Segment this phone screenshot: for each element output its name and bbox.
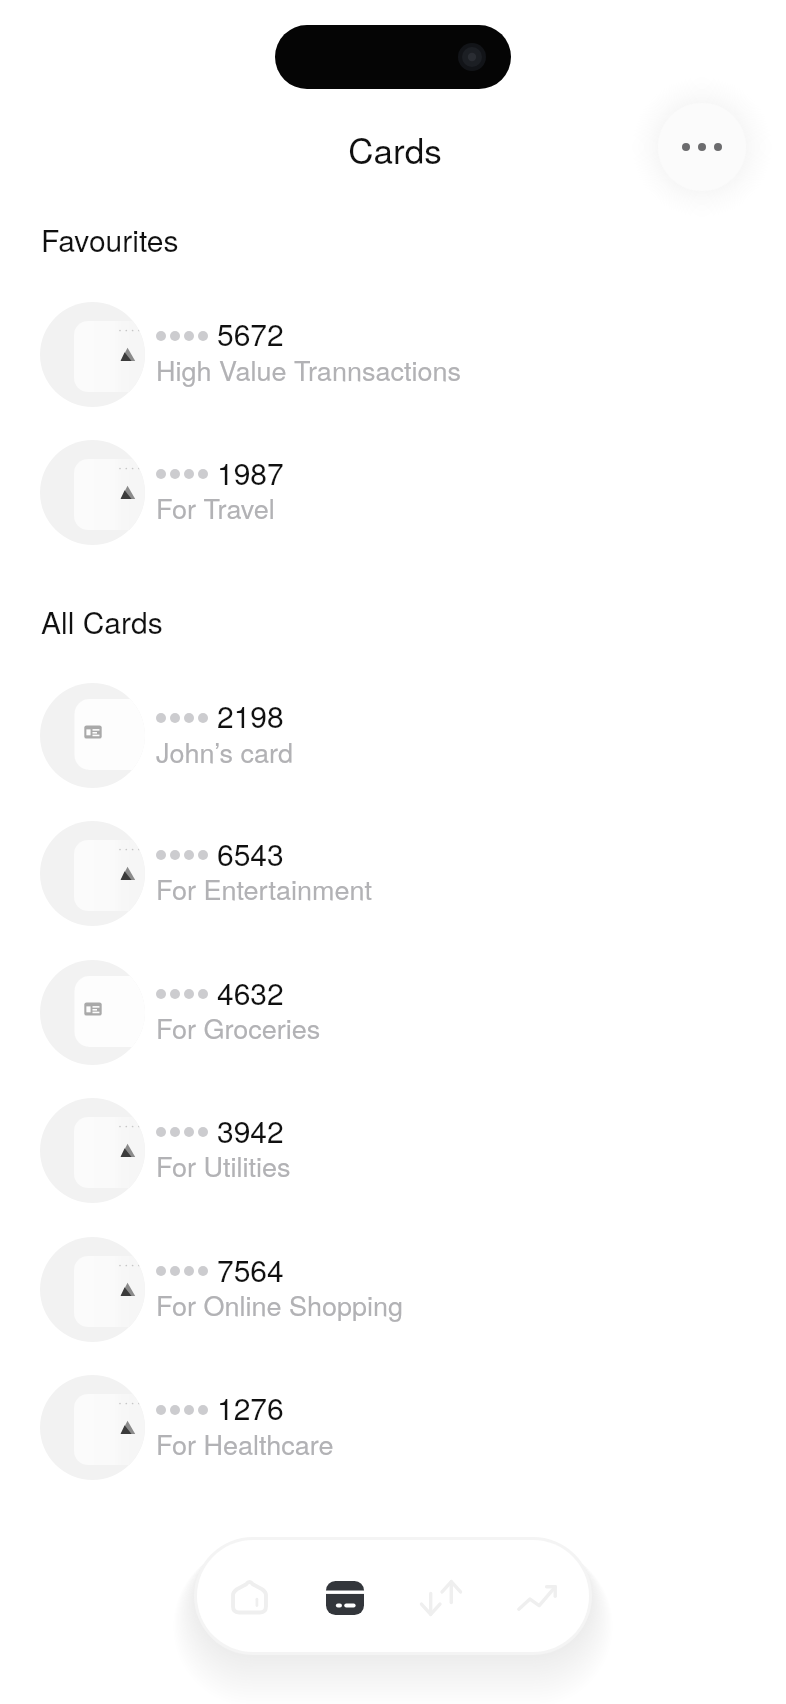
button[interactable]: [0, 285, 786, 423]
staticText: 1276: [217, 1386, 284, 1429]
button[interactable]: [0, 667, 786, 805]
staticText: For Utilities: [156, 1146, 291, 1185]
button[interactable]: [0, 804, 786, 942]
button[interactable]: [0, 1221, 786, 1359]
staticText: 7564: [217, 1248, 284, 1291]
staticText: 1987: [217, 451, 284, 494]
button[interactable]: Transfer: [399, 1556, 483, 1640]
button[interactable]: [0, 423, 786, 561]
staticText: 4632: [217, 971, 284, 1014]
staticText: For Travel: [156, 488, 275, 527]
button[interactable]: [0, 943, 786, 1081]
button[interactable]: Analytics: [495, 1556, 579, 1640]
button[interactable]: More options: [658, 103, 746, 191]
staticText: For Entertainment: [156, 869, 372, 908]
staticText: John’s card: [156, 732, 294, 771]
staticText: 6543: [217, 832, 284, 875]
button[interactable]: Cards: [303, 1556, 387, 1640]
staticText: 2198: [217, 694, 284, 737]
staticText: For Groceries: [156, 1008, 321, 1047]
staticText: Cards: [2, 124, 786, 174]
staticText: All Cards: [41, 600, 163, 643]
staticText: For Online Shopping: [156, 1285, 404, 1324]
staticText: 5672: [217, 312, 284, 355]
staticText: Favourites: [41, 218, 179, 261]
staticText: 3942: [217, 1109, 284, 1152]
staticText: High Value Trannsactions: [156, 350, 461, 389]
button[interactable]: Home: [207, 1556, 291, 1640]
staticText: For Healthcare: [156, 1424, 334, 1463]
button[interactable]: [0, 1359, 786, 1497]
button[interactable]: [0, 1082, 786, 1220]
